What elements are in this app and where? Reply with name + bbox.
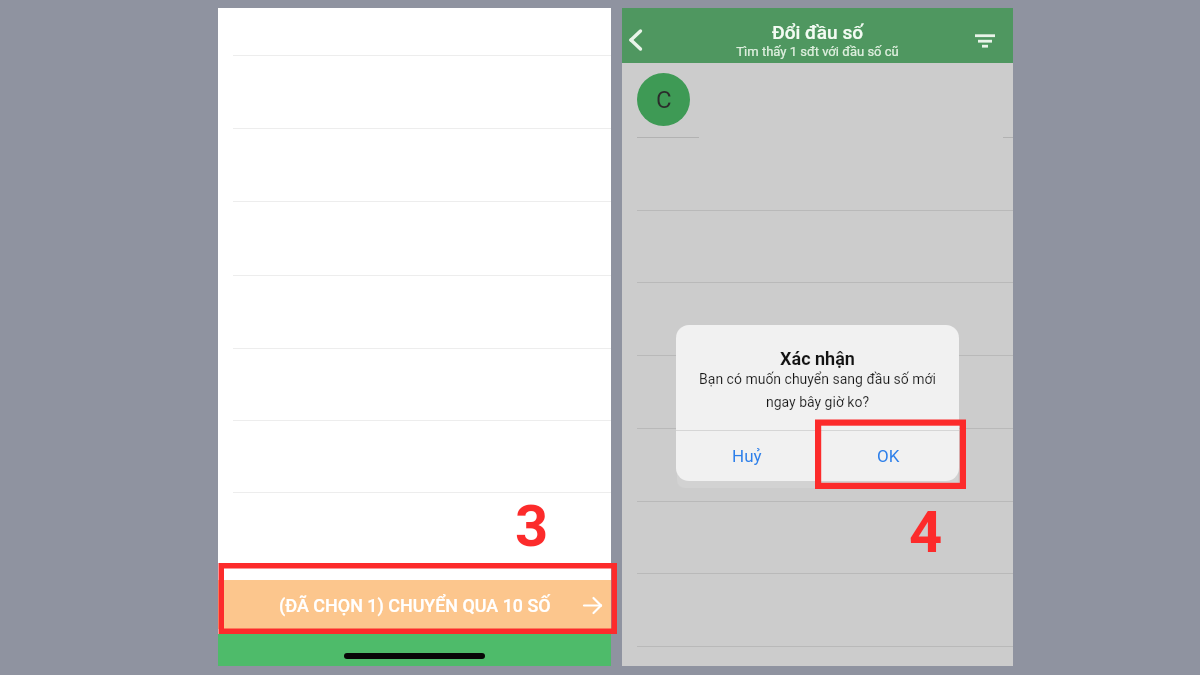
button[interactable]: Filter [963, 19, 1007, 63]
button[interactable]: OK [818, 431, 959, 481]
staticText: Đổi đầu số [622, 21, 1013, 43]
staticText: OK [877, 446, 900, 466]
staticText: Xác nhận [676, 348, 959, 369]
staticText: (ĐÃ CHỌN 1) CHUYỂN QUA 10 SỐ [279, 595, 551, 616]
staticText: Huỷ [732, 446, 762, 466]
button[interactable]: Huỷ [676, 431, 817, 481]
button[interactable]: (ĐÃ CHỌN 1) CHUYỂN QUA 10 SỐ [218, 580, 611, 629]
staticText: C [656, 86, 672, 114]
staticText: 3 [515, 492, 549, 560]
staticText: 4 [909, 498, 943, 566]
staticText: Bạn có muốn chuyển sang đầu số mới ngay … [676, 371, 959, 410]
button[interactable]: Back [612, 16, 660, 64]
staticText: Tìm thấy 1 sđt với đầu số cũ [622, 44, 1013, 59]
